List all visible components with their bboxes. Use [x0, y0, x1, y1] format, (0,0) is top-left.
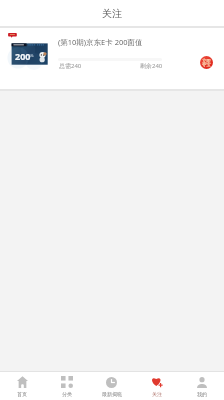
staticText: 我的	[197, 391, 207, 397]
staticText: 关注	[152, 391, 162, 397]
staticText: 最新揭晓	[102, 391, 122, 397]
staticText: 总需240	[59, 62, 82, 70]
button[interactable]: 最新揭晓	[89, 372, 134, 397]
button[interactable]: 分类	[44, 372, 89, 397]
button[interactable]: 200	[0, 28, 224, 89]
staticText: 立即 夺宝	[202, 58, 211, 68]
staticText: 200	[15, 50, 31, 62]
button[interactable]: 关注	[134, 372, 179, 397]
staticText: 分类	[62, 391, 72, 397]
staticText: 首页	[17, 391, 27, 397]
staticText: 关注	[102, 7, 122, 20]
staticText: 剩余240	[140, 62, 163, 70]
staticText: 元	[30, 54, 34, 58]
button[interactable]: 首页	[0, 372, 44, 397]
staticText: (第10期)京东E卡 200面值	[58, 37, 143, 47]
button[interactable]: 立即夺宝	[200, 56, 213, 69]
button[interactable]: 我的	[179, 372, 224, 397]
